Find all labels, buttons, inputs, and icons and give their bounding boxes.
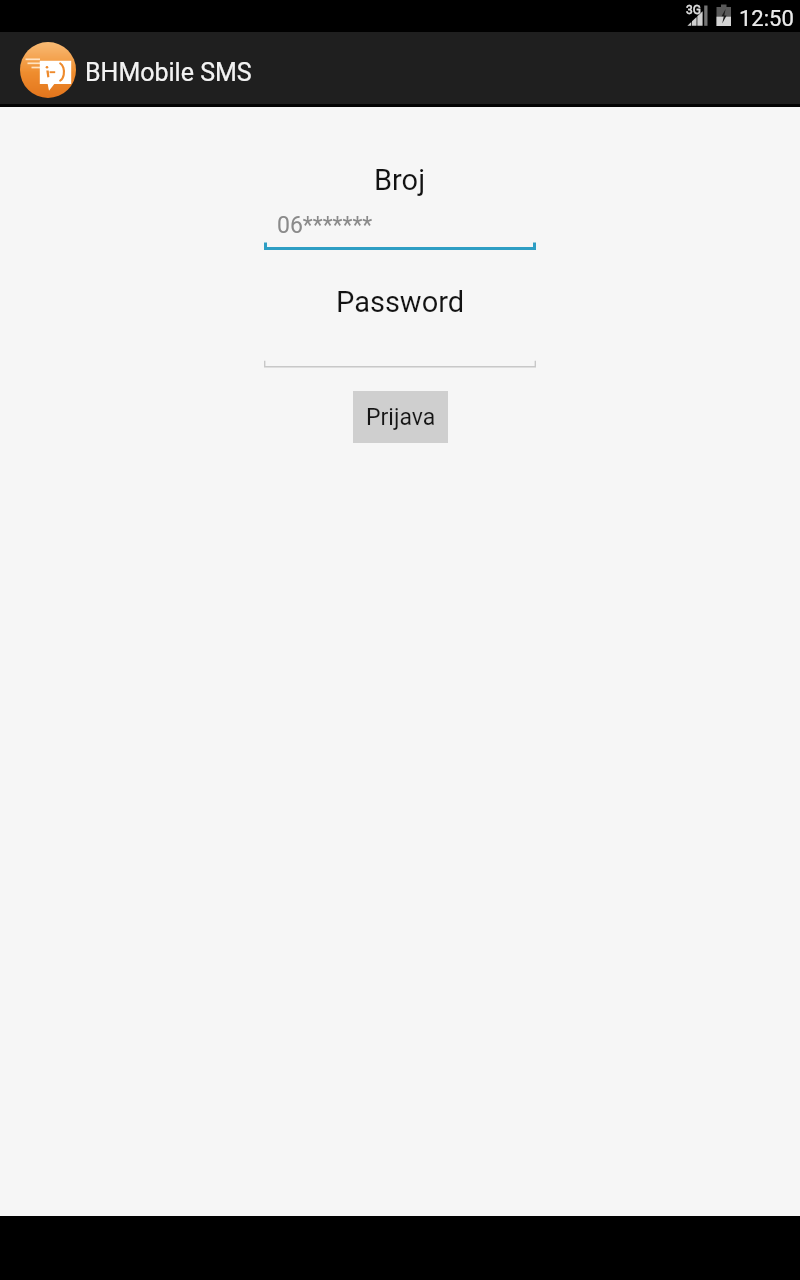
button[interactable]: Broj, phone number field [264, 209, 536, 251]
button[interactable]: Password field [264, 330, 536, 370]
other: Mobile signal strength [685, 4, 710, 27]
staticText: 3G [686, 3, 701, 17]
staticText: 12:50 [739, 6, 794, 32]
button[interactable]: Prijava [353, 391, 448, 443]
staticText: Broj [374, 163, 426, 197]
staticText: Password [336, 285, 465, 319]
other: BHMobile SMS app icon [20, 42, 76, 98]
staticText: 06******* [277, 212, 373, 239]
staticText: BHMobile SMS [85, 58, 252, 87]
staticText: Prijava [366, 404, 436, 431]
other: Battery charging [716, 4, 732, 27]
